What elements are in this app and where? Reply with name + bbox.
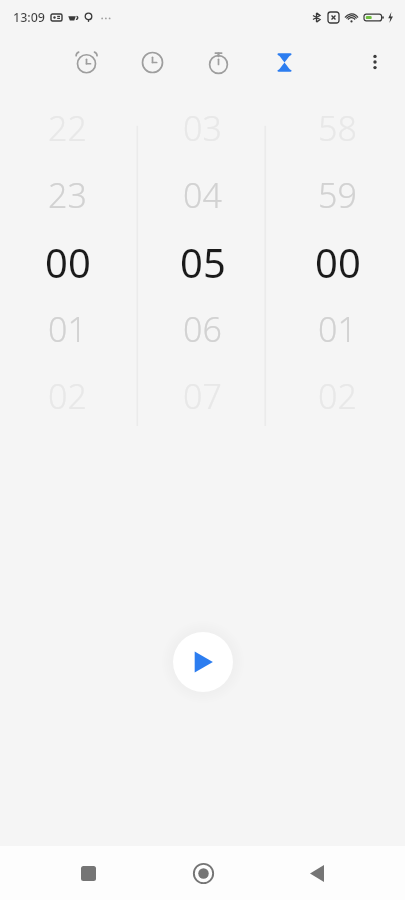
staticText: 05	[180, 235, 226, 289]
staticText: 02	[318, 373, 357, 419]
staticText: 58	[318, 105, 357, 151]
staticText: 07	[183, 373, 222, 419]
button[interactable]: More options	[353, 40, 397, 84]
staticText: 01	[318, 306, 357, 352]
button[interactable]: Stopwatch	[196, 40, 240, 84]
button[interactable]: Hours	[0, 90, 135, 510]
staticText: 23	[48, 172, 87, 218]
staticText: 01	[48, 306, 87, 352]
button[interactable]: Start timer	[173, 632, 233, 692]
staticText: 06	[183, 306, 222, 352]
button[interactable]: Timer	[262, 40, 306, 84]
staticText: 22	[48, 105, 87, 151]
button[interactable]: Seconds	[270, 90, 405, 510]
button[interactable]: Home	[177, 847, 229, 899]
button[interactable]: Recent apps	[62, 847, 114, 899]
staticText: 13:09	[13, 9, 46, 26]
staticText: 03	[183, 105, 222, 151]
staticText: 04	[183, 172, 222, 218]
button[interactable]: Minutes	[135, 90, 270, 510]
staticText: 00	[315, 235, 361, 289]
button[interactable]: World clock	[130, 40, 174, 84]
staticText: 59	[318, 172, 357, 218]
button[interactable]: Alarm	[64, 40, 108, 84]
button[interactable]: Back	[291, 847, 343, 899]
staticText: 00	[45, 235, 91, 289]
staticText: 02	[48, 373, 87, 419]
